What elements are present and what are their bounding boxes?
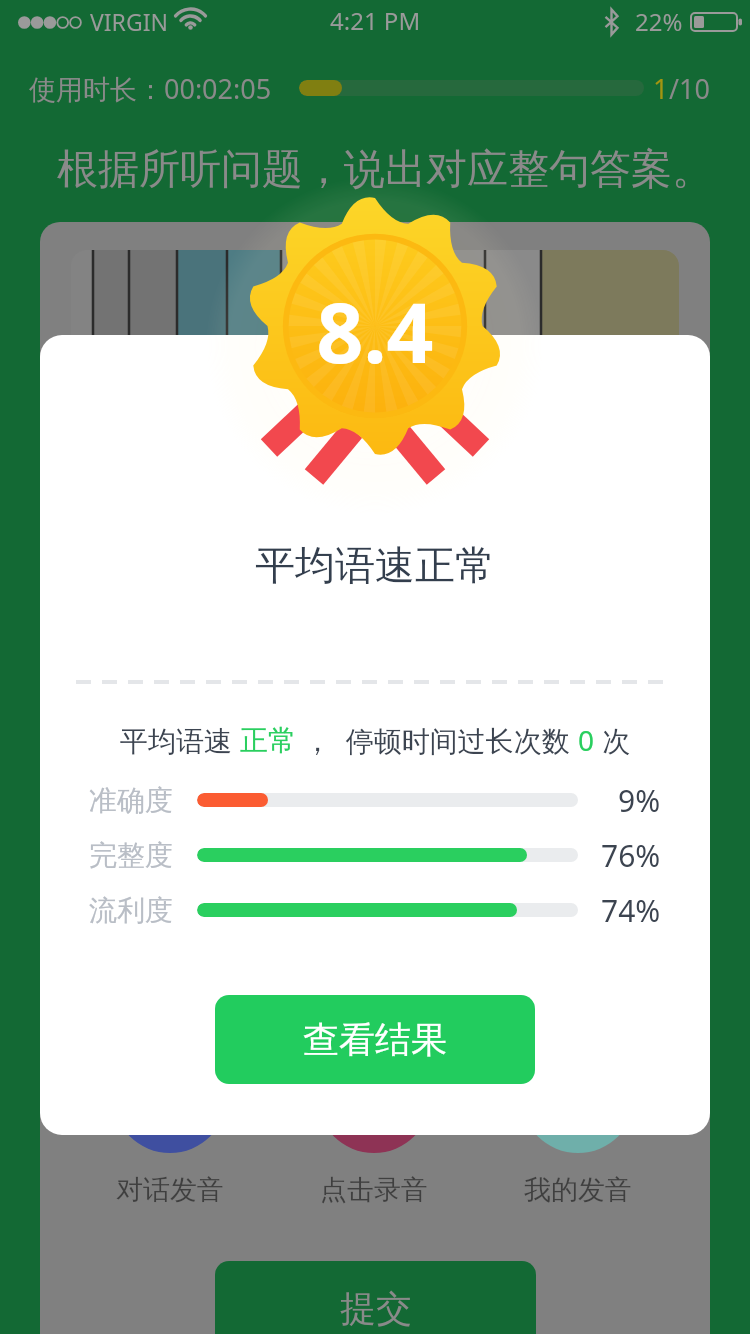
staticText: 对话发音 [116, 1173, 224, 1207]
staticText: 流利度 [89, 893, 173, 928]
staticText: 使用时长：00:02:05 [29, 70, 272, 106]
staticText: 正常 [240, 723, 296, 758]
staticText: 提交 [340, 1286, 412, 1331]
staticText: 准确度 [89, 783, 173, 818]
staticText: 我的发音 [524, 1173, 632, 1207]
staticText: /10 [669, 70, 710, 106]
button[interactable]: 提交 [215, 1261, 536, 1334]
staticText: 次 [595, 721, 631, 759]
button[interactable]: 我的发音 [498, 1039, 658, 1207]
staticText: 1 [653, 70, 669, 106]
staticText: 4:21 PM [330, 4, 421, 37]
button[interactable]: 点击录音 [294, 1039, 454, 1207]
staticText: 根据所听问题，说出对应整句答案。 [10, 144, 750, 196]
button[interactable]: 对话发音 [90, 1039, 250, 1207]
staticText: 点击录音 [320, 1173, 428, 1207]
staticText: 平均语速正常 [40, 540, 710, 590]
staticText: 完整度 [89, 838, 173, 873]
staticText: 0 [578, 721, 595, 759]
staticText: 查看结果 [303, 1017, 447, 1062]
staticText: VIRGIN [90, 6, 168, 37]
staticText: 8.4 [187, 275, 563, 387]
staticText: 22% [635, 5, 683, 38]
staticText: 9% [618, 780, 661, 821]
staticText: 平均语速 [120, 721, 240, 759]
staticText: 76% [601, 835, 661, 876]
staticText: 74% [601, 890, 661, 931]
staticText: ， 停顿时间过长次数 [296, 721, 578, 759]
button[interactable]: 查看结果 [215, 995, 535, 1084]
